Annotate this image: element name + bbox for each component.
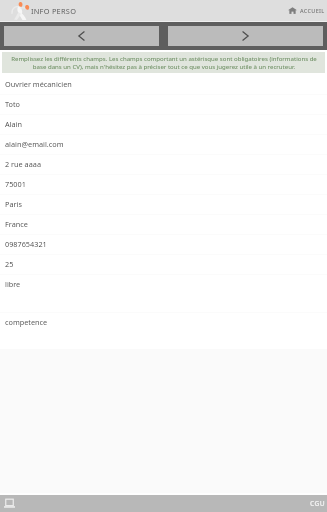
button[interactable]: Alain [0, 115, 327, 135]
staticText: alain@email.com [5, 139, 64, 149]
button[interactable]: ACCUEIL [287, 7, 326, 14]
staticText: 0987654321 [5, 239, 47, 249]
button[interactable]: CGU [309, 497, 326, 510]
button[interactable]: alain@email.com [0, 135, 327, 155]
staticText: ACCUEIL [300, 7, 325, 14]
button[interactable]: Previous [4, 26, 159, 46]
button[interactable]: 25 [0, 255, 327, 275]
staticText: 25 [5, 259, 14, 269]
staticText: Remplissez les différents champs. Les ch… [11, 55, 317, 71]
staticText: libre [5, 279, 21, 289]
button[interactable]: 75001 [0, 175, 327, 195]
staticText: Ouvrier mécanicien [5, 79, 72, 89]
button[interactable]: Desktop site [3, 497, 16, 510]
staticText: France [5, 219, 28, 229]
button[interactable]: France [0, 215, 327, 235]
staticText: 2 rue aaaa [5, 159, 41, 169]
staticText: CGU [310, 499, 325, 508]
button[interactable]: Toto [0, 95, 327, 115]
staticText: competence [5, 317, 48, 327]
button[interactable]: competence [0, 313, 327, 349]
staticText: Toto [5, 99, 21, 109]
button[interactable]: Next [168, 26, 323, 46]
staticText: Alain [5, 119, 23, 129]
button[interactable]: 0987654321 [0, 235, 327, 255]
staticText: Paris [5, 199, 22, 209]
staticText: 75001 [5, 179, 26, 189]
button[interactable]: Paris [0, 195, 327, 215]
button[interactable]: libre [0, 275, 327, 313]
button[interactable]: Ouvrier mécanicien [0, 75, 327, 95]
button[interactable]: 2 rue aaaa [0, 155, 327, 175]
staticText: INFO PERSO [31, 6, 77, 16]
